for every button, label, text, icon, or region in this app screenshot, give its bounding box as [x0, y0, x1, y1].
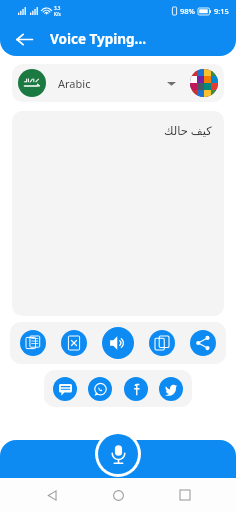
staticText: 98% — [180, 6, 195, 16]
staticText: 3.3 — [54, 5, 61, 11]
button[interactable]: Home — [103, 480, 133, 510]
button[interactable]: Message — [53, 377, 77, 401]
staticText: K/s — [54, 11, 61, 17]
button[interactable]: Translate — [20, 330, 46, 356]
button[interactable]: كيف حالك — [12, 111, 224, 316]
button[interactable]: WhatsApp — [88, 377, 112, 401]
button[interactable] — [0, 440, 236, 478]
button[interactable]: Back — [37, 480, 67, 510]
button[interactable]: Clear — [61, 330, 87, 356]
button[interactable]: Twitter — [159, 377, 183, 401]
button[interactable]: Speak — [102, 327, 134, 359]
button[interactable]: Facebook — [124, 377, 148, 401]
button[interactable]: Back — [10, 25, 38, 53]
button[interactable]: Copy — [149, 330, 175, 356]
button[interactable]: Start voice input — [98, 434, 138, 474]
staticText: 9:15 — [214, 6, 229, 16]
staticText: كيف حالك — [164, 123, 212, 139]
button[interactable]: Recents — [170, 480, 200, 510]
button[interactable]: Share — [190, 330, 216, 356]
staticText: Voice Typing... — [50, 30, 146, 48]
button[interactable]: Arabic — [12, 64, 224, 102]
staticText: Arabic — [58, 76, 91, 91]
